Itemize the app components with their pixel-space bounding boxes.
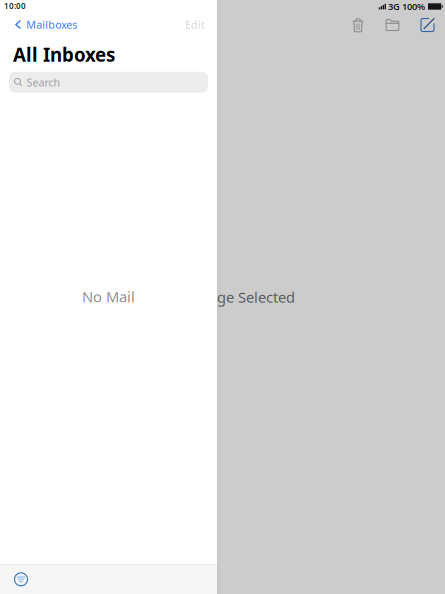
staticText: No Message Selected: [150, 287, 295, 307]
staticText: 3G: [388, 0, 400, 13]
staticText: 10:00: [4, 1, 26, 11]
button[interactable]: Mailboxes: [0, 16, 83, 33]
staticText: Search: [26, 75, 60, 89]
button[interactable]: Delete: [341, 13, 375, 37]
button[interactable]: Edit: [173, 16, 217, 33]
staticText: No Mail: [82, 287, 135, 306]
staticText: 100%: [402, 0, 425, 13]
staticText: Mailboxes: [26, 17, 77, 32]
button[interactable]: Move to Folder: [375, 13, 410, 37]
staticText: Edit: [185, 17, 205, 32]
button[interactable]: Compose: [410, 13, 445, 37]
staticText: All Inboxes: [13, 42, 115, 67]
button[interactable]: Filter: [7, 565, 35, 593]
